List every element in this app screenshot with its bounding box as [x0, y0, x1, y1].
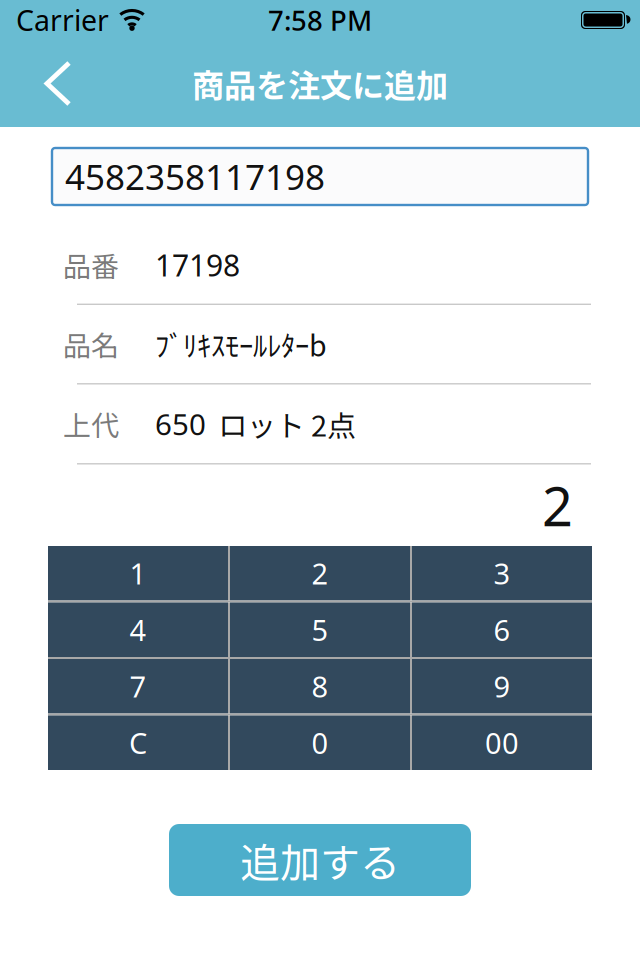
staticText: 品番 [63, 244, 119, 285]
button[interactable]: 00 [412, 715, 592, 770]
staticText: 17198 [155, 244, 240, 285]
button[interactable]: 6 [412, 602, 592, 657]
staticText: 00 [485, 723, 519, 762]
button[interactable]: 5 [230, 602, 410, 657]
staticText: 3 [493, 553, 510, 593]
button[interactable]: 2 [230, 546, 410, 600]
staticText: 追加する [240, 831, 400, 889]
staticText: 0 [311, 723, 328, 762]
button[interactable]: C [48, 715, 228, 770]
staticText: 4 [129, 610, 146, 649]
staticText: 6 [493, 610, 510, 649]
staticText: 5 [311, 610, 328, 649]
button[interactable]: 9 [412, 659, 592, 713]
staticText: 8 [311, 666, 328, 706]
staticText: 4582358117198 [65, 153, 325, 200]
staticText: 商品を注文に追加 [192, 60, 448, 107]
staticText: 2 [542, 468, 573, 542]
button[interactable]: 追加する [169, 824, 471, 896]
staticText: C [129, 723, 147, 762]
staticText: 7 [129, 666, 146, 706]
staticText: 2 [311, 553, 328, 593]
button[interactable]: 4 [48, 602, 228, 657]
button[interactable]: Back [0, 60, 92, 106]
button[interactable]: 0 [230, 715, 410, 770]
staticText: 上代 [63, 403, 119, 444]
staticText: ロット 2点 [206, 403, 356, 445]
staticText: 1 [129, 553, 146, 593]
button[interactable]: 7 [48, 659, 228, 713]
staticText: 9 [493, 666, 510, 706]
button[interactable]: 3 [412, 546, 592, 600]
staticText: 品名 [63, 324, 119, 364]
staticText: ﾌﾞﾘｷｽﾓｰﾙﾚﾀｰb [155, 323, 327, 365]
staticText: 7:58 PM [268, 1, 372, 39]
staticText: Carrier [16, 1, 109, 39]
button[interactable]: バーコード [52, 148, 588, 205]
button[interactable]: 8 [230, 659, 410, 713]
button[interactable]: 1 [48, 546, 228, 600]
staticText: 650 [155, 404, 206, 444]
